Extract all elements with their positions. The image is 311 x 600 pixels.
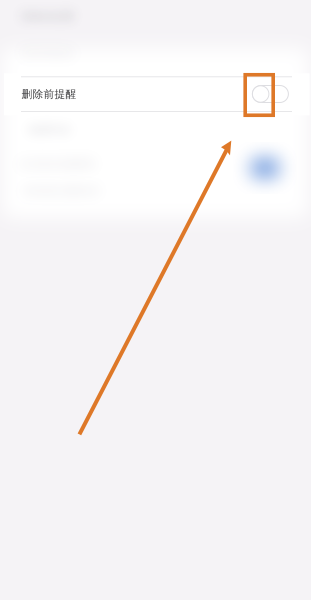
staticText: 删除前提醒 — [21, 88, 76, 101]
button[interactable]: 删除前提醒 — [4, 73, 309, 115]
